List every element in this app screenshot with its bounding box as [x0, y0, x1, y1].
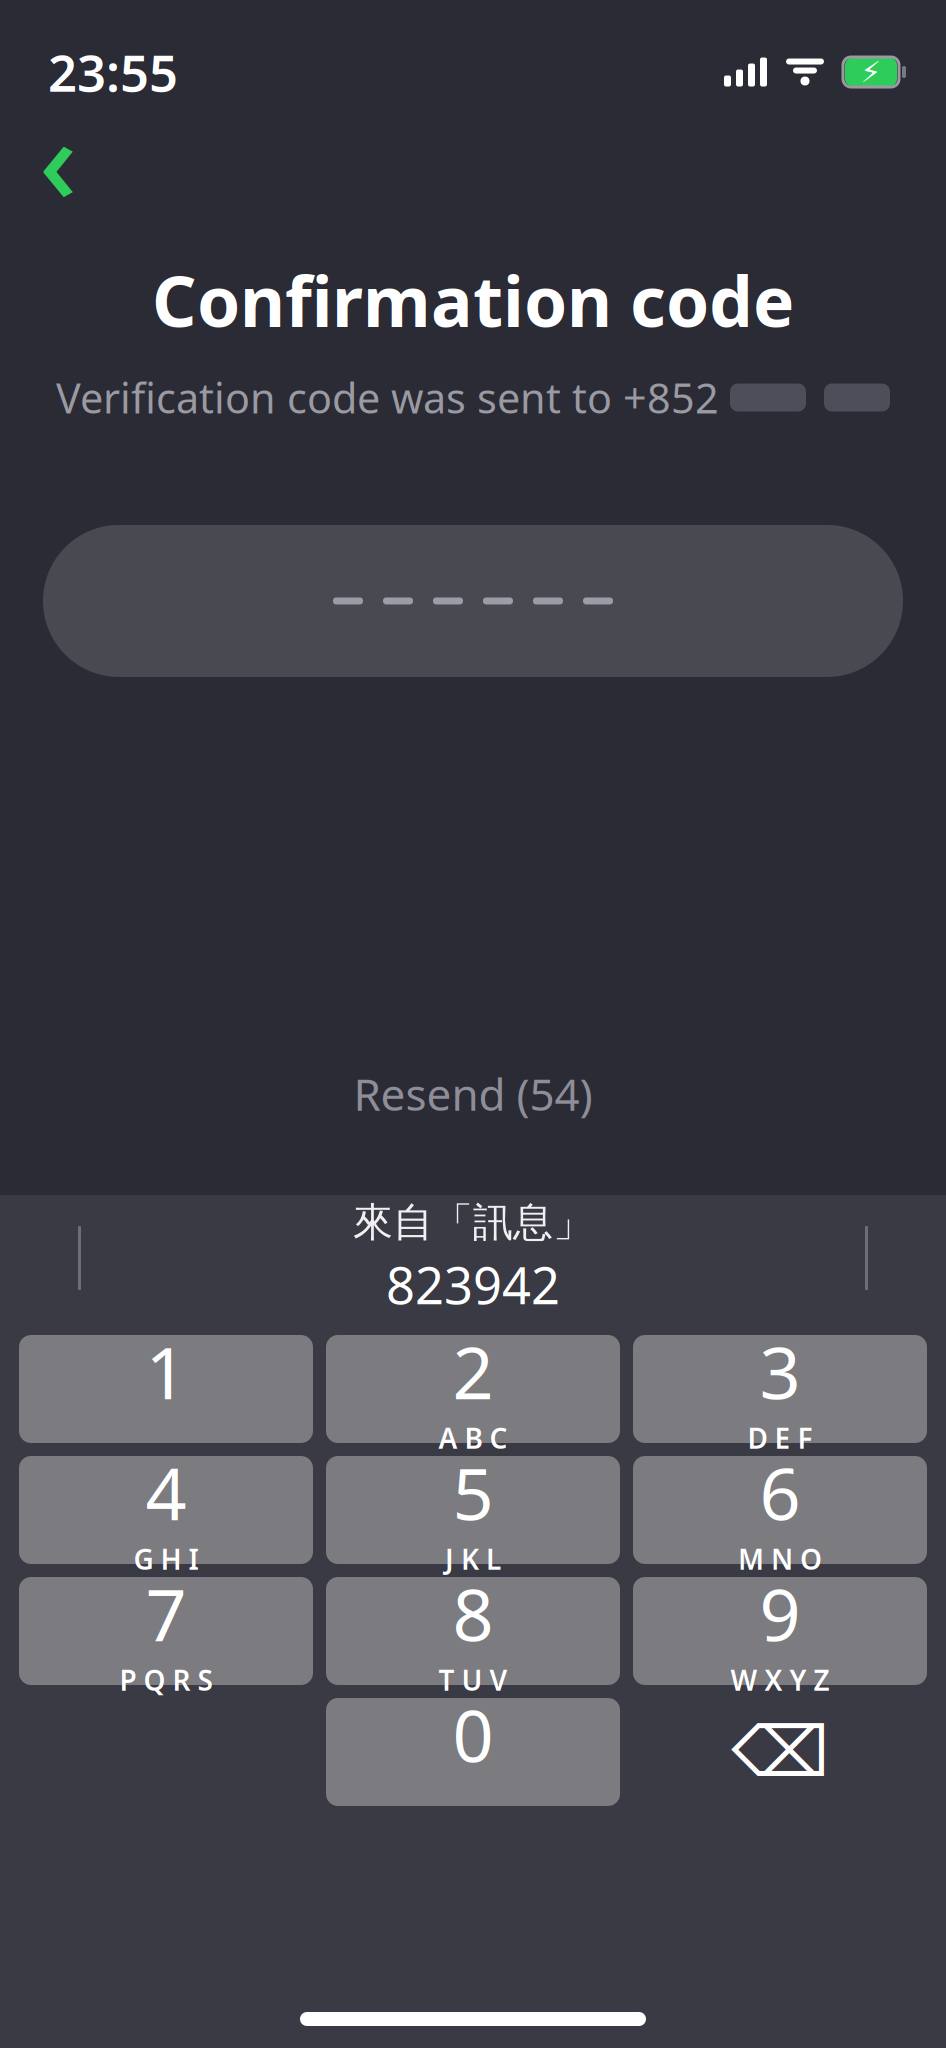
button[interactable]: 8 — [326, 1577, 620, 1685]
staticText: 5 — [452, 1445, 493, 1540]
button[interactable] — [43, 525, 903, 677]
staticText: ‹ — [39, 80, 77, 236]
button[interactable]: 9 — [633, 1577, 927, 1685]
staticText: 1 — [145, 1324, 186, 1419]
staticText: ⚡︎ — [860, 55, 881, 89]
staticText: J K L — [445, 1540, 501, 1577]
staticText: 6 — [759, 1445, 800, 1540]
staticText: 8 — [452, 1566, 493, 1661]
staticText: ⌫ — [731, 1713, 829, 1791]
staticText: Resend (54) — [353, 1065, 592, 1123]
staticText: 823942 — [386, 1251, 560, 1318]
staticText: P Q R S — [119, 1661, 212, 1698]
button[interactable]: 1 — [19, 1335, 313, 1443]
staticText: 2 — [452, 1324, 493, 1419]
button[interactable]: 7 — [19, 1577, 313, 1685]
staticText: 4 — [145, 1445, 186, 1540]
button[interactable]: 6 — [633, 1456, 927, 1564]
staticText: 0 — [452, 1687, 493, 1782]
button[interactable]: Resend (54) — [319, 1053, 626, 1135]
staticText: W X Y Z — [730, 1661, 829, 1698]
staticText: Verification code was sent to +852 — [56, 370, 730, 425]
button[interactable]: 3 — [633, 1335, 927, 1443]
button[interactable]: Delete — [633, 1698, 927, 1806]
staticText: 3 — [759, 1324, 800, 1419]
button[interactable]: Back — [10, 110, 106, 206]
staticText: D E F — [747, 1419, 812, 1456]
button[interactable]: 0 — [326, 1698, 620, 1806]
button[interactable]: 5 — [326, 1456, 620, 1564]
button[interactable]: 2 — [326, 1335, 620, 1443]
staticText: M N O — [738, 1540, 822, 1577]
staticText: 7 — [145, 1566, 186, 1661]
staticText: 9 — [759, 1566, 800, 1661]
staticText: T U V — [438, 1661, 507, 1698]
button[interactable]: 4 — [19, 1456, 313, 1564]
staticText: G H I — [133, 1540, 198, 1577]
staticText: 23:55 — [48, 38, 178, 106]
staticText: Confirmation code — [152, 254, 794, 346]
button[interactable]: 來自「訊息」 — [0, 1195, 946, 1321]
staticText: A B C — [438, 1419, 507, 1456]
staticText: 來自「訊息」 — [353, 1198, 593, 1247]
